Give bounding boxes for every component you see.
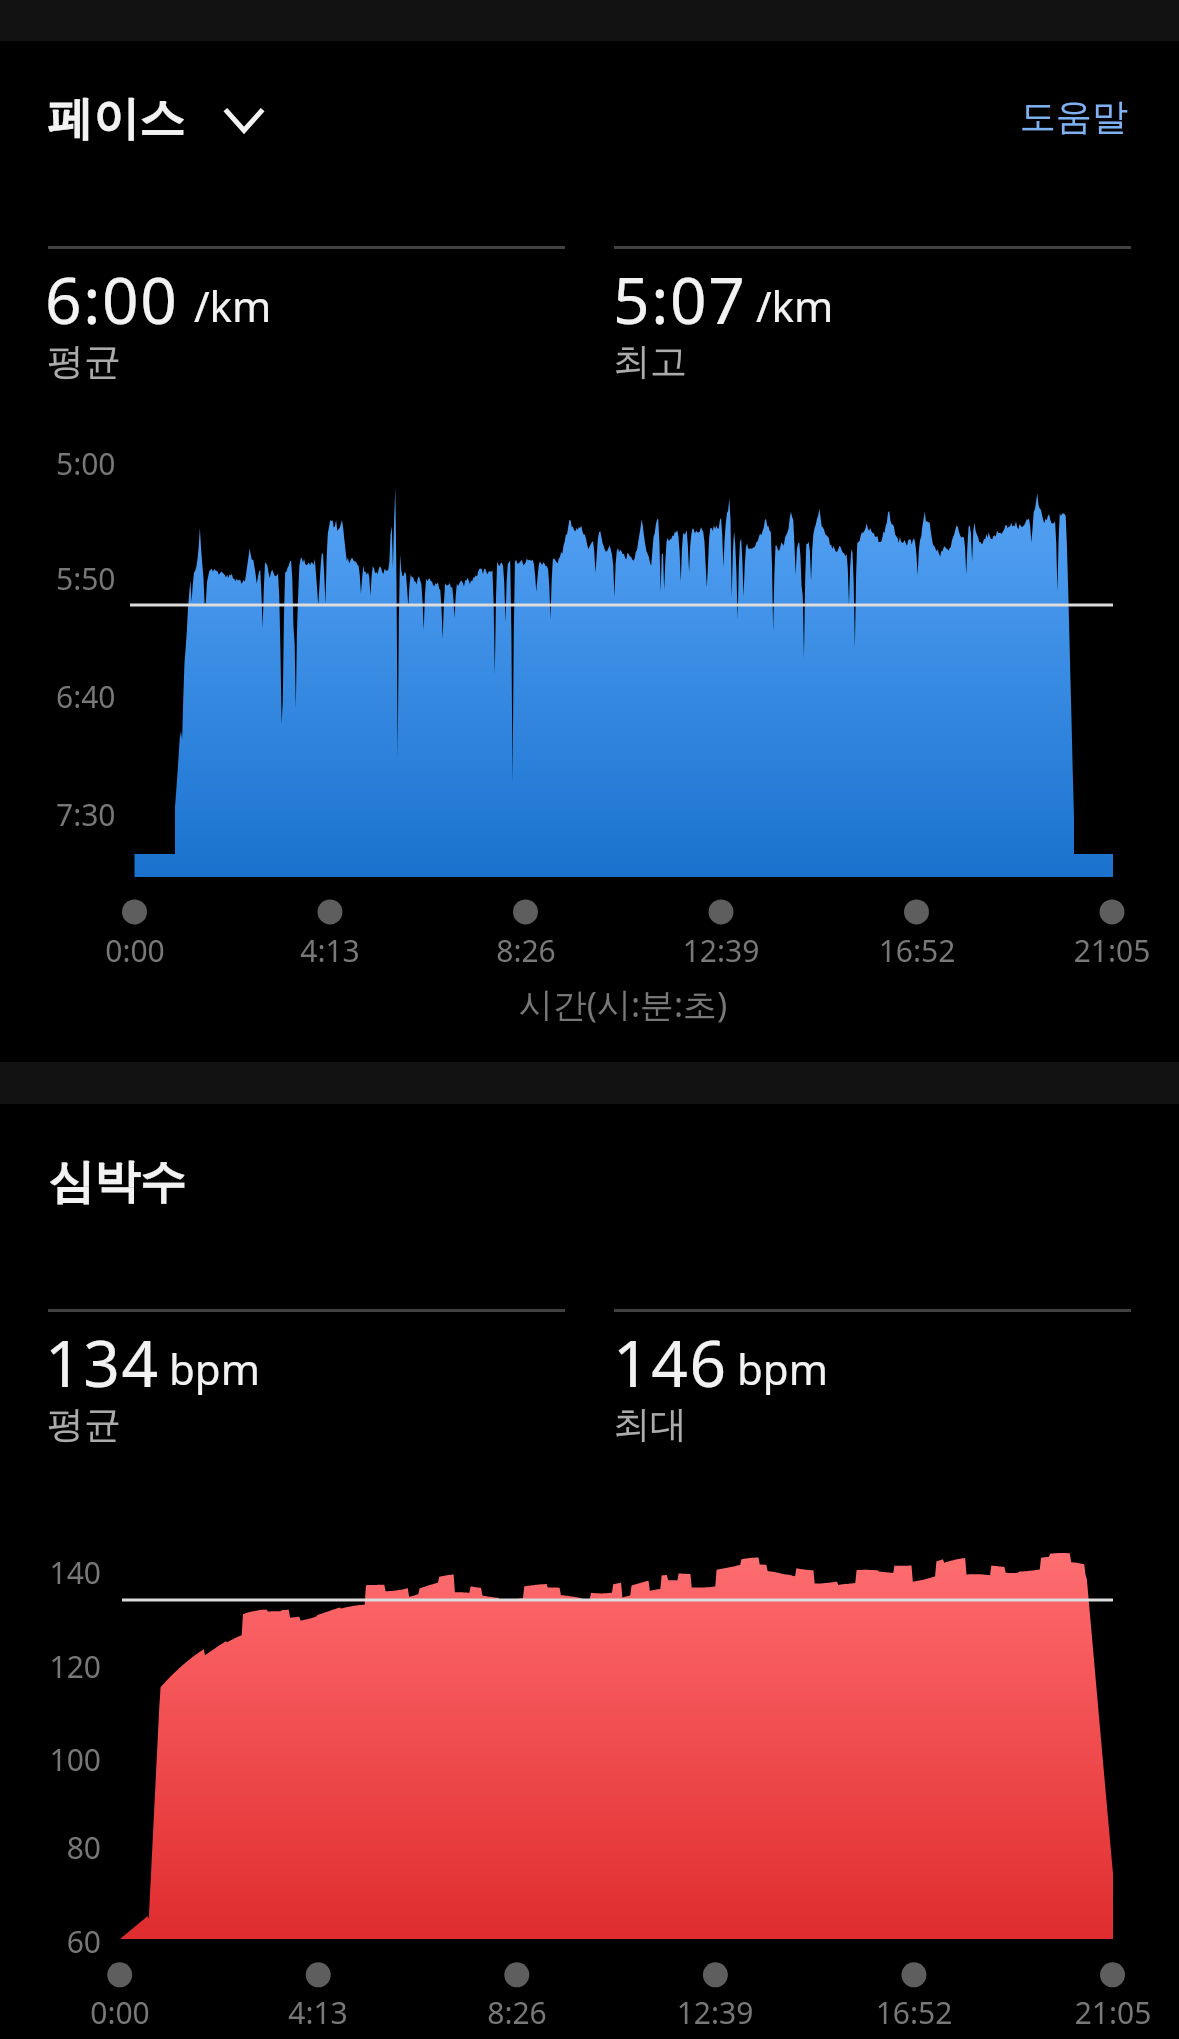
staticText: 140 — [0, 1552, 101, 1603]
staticText: 도움말 — [1020, 94, 1128, 139]
staticText: 12:39 — [625, 1992, 805, 2039]
staticText: 5:07 — [613, 256, 747, 343]
staticText: 4:13 — [240, 930, 420, 981]
other: Change metric — [222, 105, 272, 139]
staticText: 80 — [0, 1827, 101, 1878]
staticText: 146 — [613, 1319, 728, 1406]
staticText: 16:52 — [824, 1992, 1004, 2039]
staticText: 시간(시:분:초) — [423, 981, 823, 1039]
staticText: 6:40 — [56, 676, 116, 717]
staticText: 0:00 — [45, 930, 225, 981]
staticText: 6:00 — [45, 256, 179, 343]
staticText: 12:39 — [631, 930, 811, 981]
staticText: 7:30 — [56, 794, 116, 835]
staticText: 21:05 — [1023, 1992, 1179, 2039]
staticText: 평균 — [47, 1401, 121, 1448]
staticText: 평균 — [47, 338, 121, 385]
staticText: 5:00 — [56, 443, 116, 484]
button[interactable]: 도움말 — [1010, 74, 1151, 162]
staticText: /km — [194, 277, 272, 334]
staticText: 0:00 — [30, 1992, 210, 2039]
staticText: 8:26 — [436, 930, 616, 981]
staticText: /km — [756, 277, 834, 334]
staticText: 4:13 — [228, 1992, 408, 2039]
staticText: 심박수 — [48, 1153, 186, 1211]
staticText: 최고 — [613, 338, 687, 385]
staticText: 페이스 — [47, 90, 185, 148]
staticText: bpm — [169, 1340, 260, 1397]
staticText: bpm — [737, 1340, 828, 1397]
staticText: 60 — [0, 1921, 101, 1972]
button[interactable]: 페이스 — [22, 72, 292, 164]
staticText: 8:26 — [427, 1992, 607, 2039]
staticText: 21:05 — [1022, 930, 1179, 981]
staticText: 100 — [0, 1739, 101, 1790]
staticText: 5:50 — [56, 558, 116, 599]
staticText: 134 — [45, 1319, 160, 1406]
staticText: 120 — [0, 1646, 101, 1697]
staticText: 16:52 — [827, 930, 1007, 981]
staticText: 최대 — [613, 1401, 687, 1448]
